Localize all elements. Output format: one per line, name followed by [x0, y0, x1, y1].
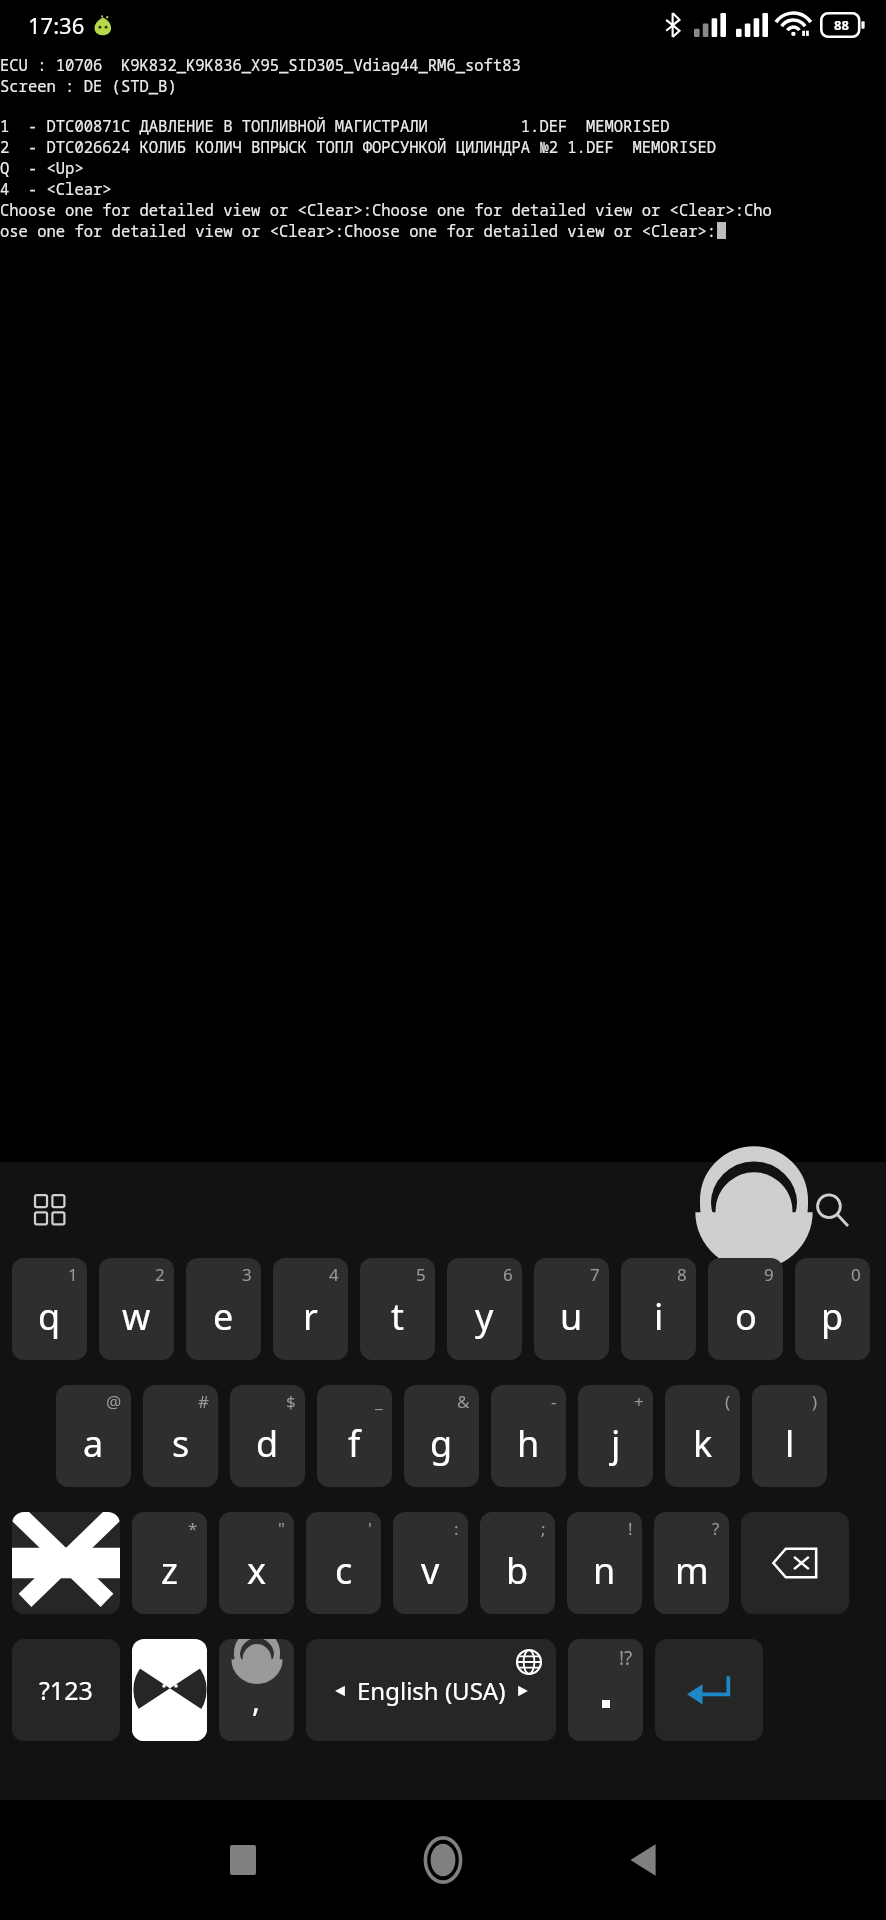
button[interactable]: Home	[343, 1800, 543, 1920]
button[interactable]: Shift	[12, 1512, 120, 1614]
staticText: i	[654, 1292, 664, 1341]
staticText: 6	[503, 1263, 513, 1286]
staticText: a	[83, 1419, 104, 1468]
staticText: 1 - DTC00871C ДАВЛЕНИЕ В ТОПЛИВНОЙ МАГИС…	[0, 115, 886, 136]
button[interactable]: +	[578, 1385, 653, 1487]
staticText: "	[278, 1517, 285, 1540]
button[interactable]: 6	[447, 1258, 522, 1360]
staticText: !?	[619, 1645, 633, 1671]
staticText: y	[475, 1292, 494, 1341]
staticText: ,	[252, 1680, 261, 1721]
staticText: g	[430, 1419, 453, 1468]
staticText: 7	[590, 1263, 600, 1286]
staticText: 4 - <Clear>	[0, 178, 886, 199]
staticText: s	[172, 1419, 190, 1468]
staticText: 17:36	[28, 10, 85, 40]
staticText: b	[506, 1546, 529, 1595]
staticText: '	[368, 1517, 372, 1540]
button[interactable]: Keyboard options	[20, 1180, 80, 1240]
staticText: n	[593, 1546, 616, 1595]
button[interactable]: Enter	[655, 1639, 763, 1741]
staticText: $	[286, 1390, 296, 1413]
button[interactable]: ?	[654, 1512, 729, 1614]
button[interactable]: Emoji	[132, 1639, 207, 1741]
button[interactable]: _	[317, 1385, 392, 1487]
staticText: _	[375, 1390, 383, 1413]
staticText: q	[38, 1292, 61, 1341]
staticText: :	[454, 1517, 459, 1540]
button[interactable]: 5	[360, 1258, 435, 1360]
staticText: f	[348, 1419, 361, 1468]
staticText: +	[634, 1390, 644, 1413]
button[interactable]: Voice input	[722, 1178, 786, 1242]
button[interactable]: )	[752, 1385, 827, 1487]
staticText: p	[821, 1292, 844, 1341]
staticText: (	[725, 1390, 731, 1413]
button[interactable]: #	[143, 1385, 218, 1487]
staticText: o	[735, 1292, 757, 1341]
staticText: -	[551, 1390, 557, 1413]
button[interactable]: !?	[568, 1639, 643, 1741]
staticText: !	[628, 1517, 633, 1540]
button[interactable]: 2	[99, 1258, 174, 1360]
staticText: u	[560, 1292, 583, 1341]
staticText: v	[421, 1546, 440, 1595]
button[interactable]: ;	[480, 1512, 555, 1614]
button[interactable]: Back	[543, 1800, 743, 1920]
staticText: &	[457, 1390, 470, 1413]
staticText: k	[693, 1419, 713, 1468]
button[interactable]: (	[665, 1385, 740, 1487]
staticText: )	[812, 1390, 818, 1413]
staticText: ose one for detailed view or <Clear>:Cho…	[0, 220, 717, 241]
staticText: 1	[68, 1263, 78, 1286]
button[interactable]: 3	[186, 1258, 261, 1360]
staticText: x	[247, 1546, 267, 1595]
button[interactable]: $	[230, 1385, 305, 1487]
button[interactable]: Backspace	[741, 1512, 849, 1614]
staticText: ?123	[39, 1673, 93, 1707]
staticText: 9	[764, 1263, 774, 1286]
button[interactable]: ?123	[12, 1639, 120, 1741]
staticText: t	[391, 1292, 404, 1341]
staticText: 0	[851, 1263, 861, 1286]
staticText: 8	[677, 1263, 687, 1286]
staticText: 4	[329, 1263, 339, 1286]
staticText: z	[161, 1546, 178, 1595]
staticText: 3	[242, 1263, 252, 1286]
staticText: r	[303, 1292, 318, 1341]
staticText: #	[198, 1390, 209, 1413]
staticText: @	[106, 1390, 122, 1413]
staticText: w	[122, 1292, 151, 1341]
button[interactable]: '	[306, 1512, 381, 1614]
staticText: m	[675, 1546, 709, 1595]
button[interactable]: 7	[534, 1258, 609, 1360]
staticText: ?	[712, 1517, 720, 1540]
button[interactable]: @	[56, 1385, 131, 1487]
staticText: 88	[834, 16, 849, 34]
button[interactable]: 4	[273, 1258, 348, 1360]
staticText: ;	[541, 1517, 546, 1540]
button[interactable]: !	[567, 1512, 642, 1614]
staticText: 2 - DTC026624 КОЛИБ КОЛИЧ ВПРЫСК ТОПЛ ФО…	[0, 136, 886, 157]
button[interactable]: "	[219, 1512, 294, 1614]
button[interactable]: 8	[621, 1258, 696, 1360]
staticText: ECU : 10706 K9K832_K9K836_X95_SID305_Vdi…	[0, 54, 886, 75]
staticText: h	[517, 1419, 540, 1468]
button[interactable]: Recents	[143, 1800, 343, 1920]
button[interactable]: *	[132, 1512, 207, 1614]
button[interactable]: 9	[708, 1258, 783, 1360]
staticText: Screen : DE (STD_B)	[0, 75, 886, 96]
button[interactable]: :	[393, 1512, 468, 1614]
button[interactable]: 0	[795, 1258, 870, 1360]
staticText: English (USA)	[357, 1674, 506, 1707]
staticText: Q - <Up>	[0, 157, 886, 178]
button[interactable]: English (USA)	[306, 1639, 556, 1741]
staticText: e	[213, 1292, 234, 1341]
button[interactable]: &	[404, 1385, 479, 1487]
button[interactable]: 1	[12, 1258, 87, 1360]
staticText: *	[188, 1517, 198, 1540]
button[interactable]: -	[491, 1385, 566, 1487]
staticText: j	[611, 1419, 621, 1468]
button[interactable]: Search	[800, 1178, 864, 1242]
button[interactable]: ,	[219, 1639, 294, 1741]
